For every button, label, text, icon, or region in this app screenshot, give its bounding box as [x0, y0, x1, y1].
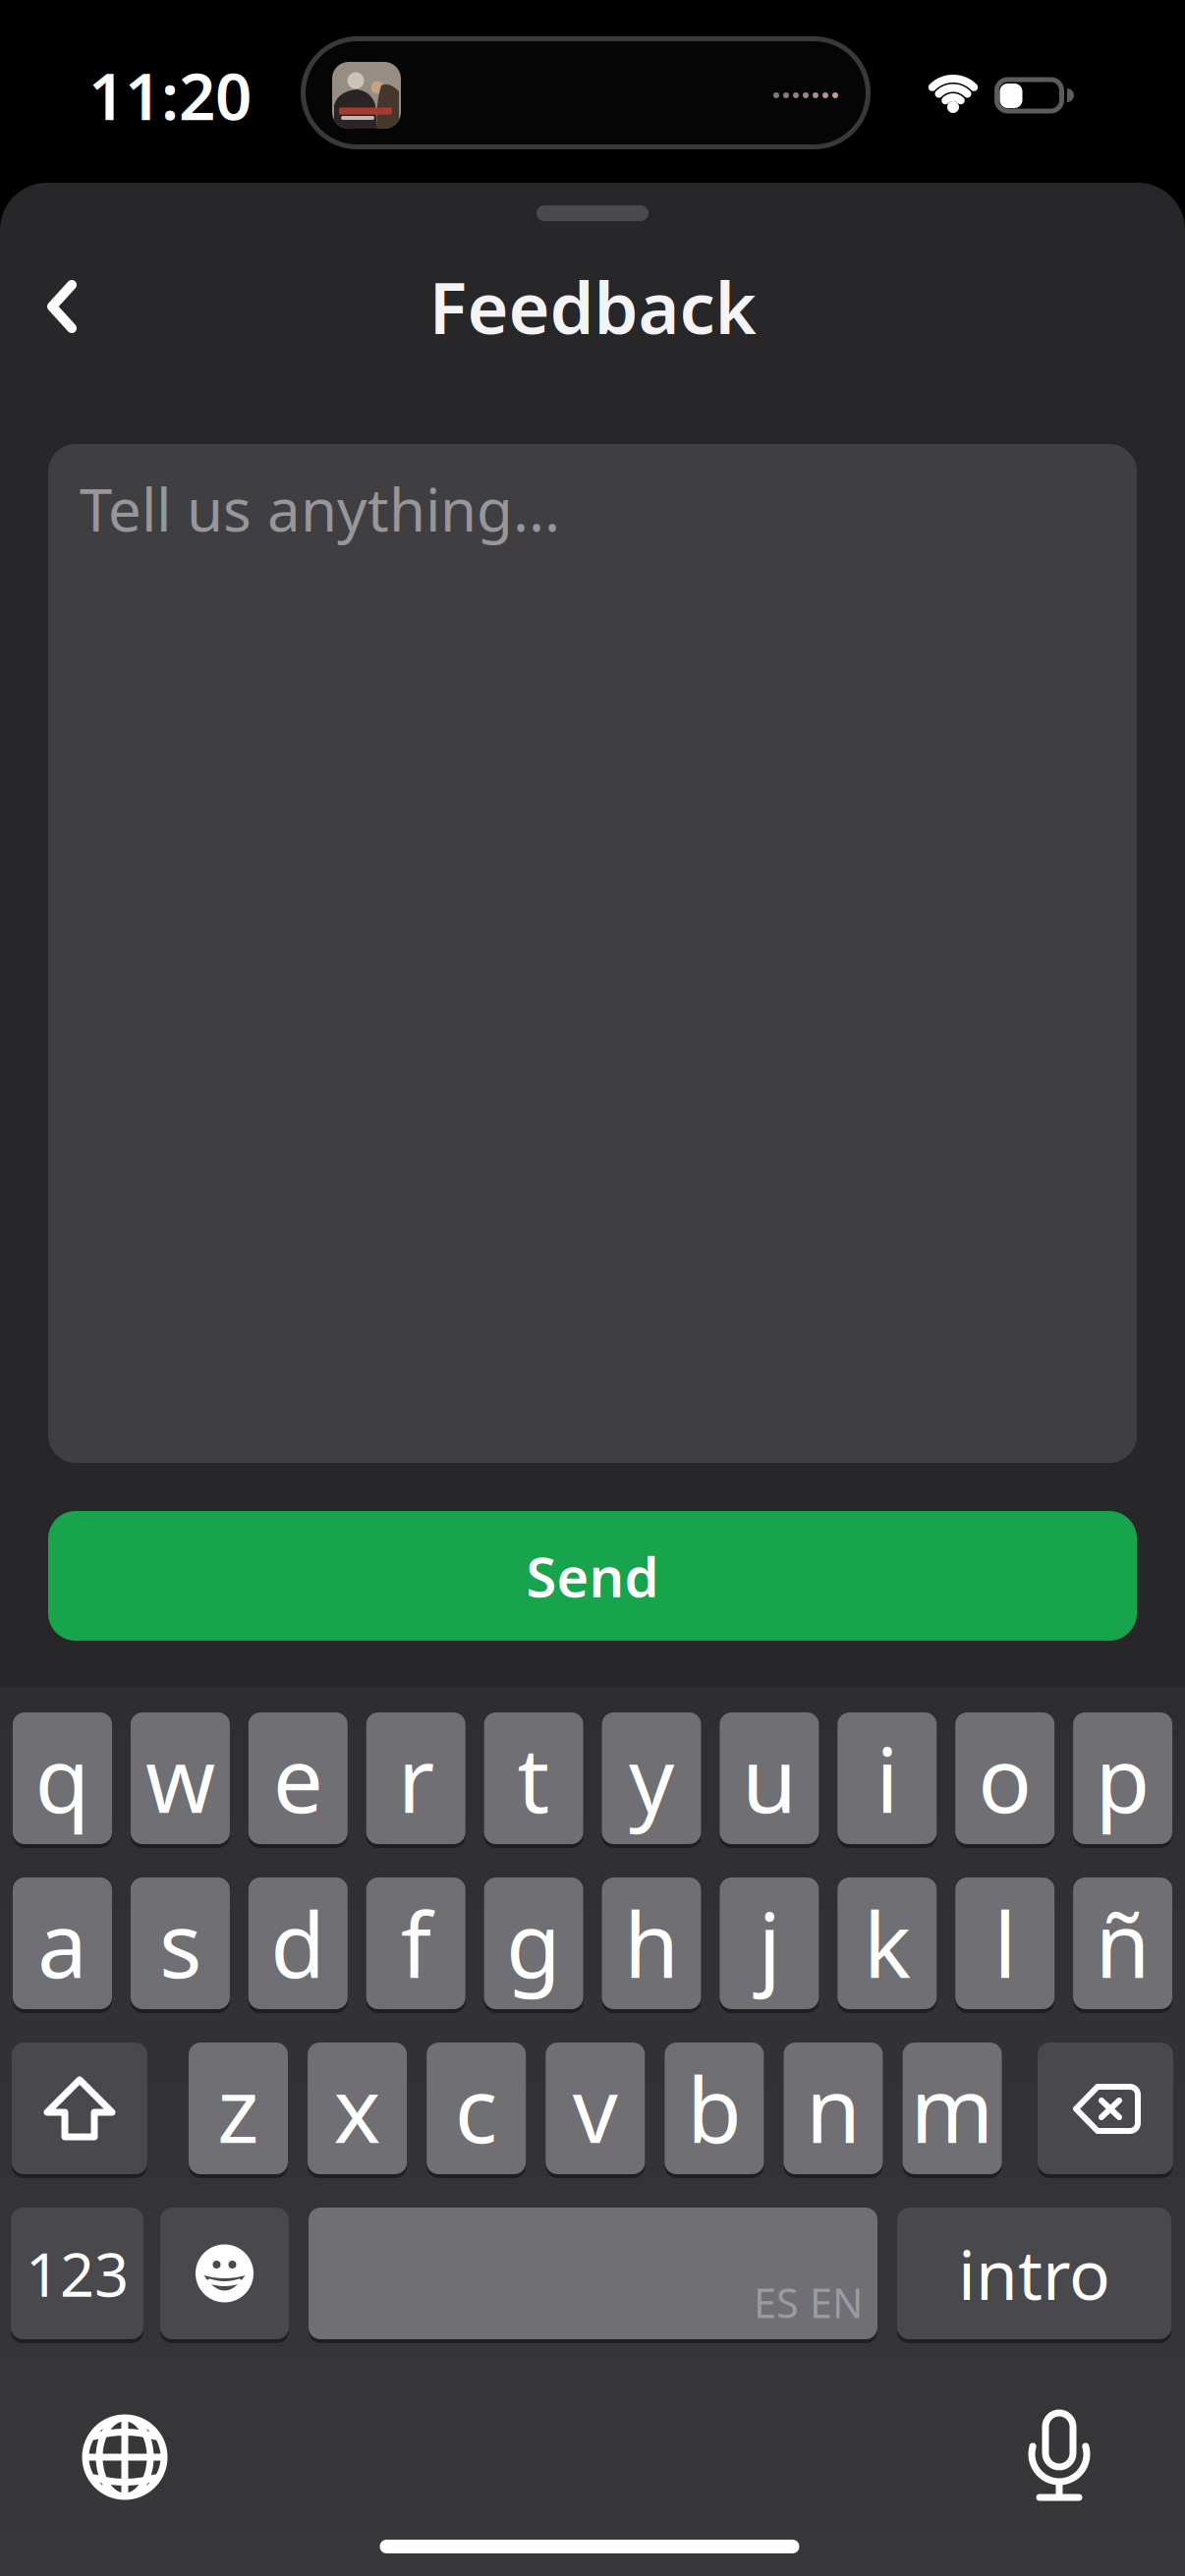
button[interactable]: k	[837, 1877, 937, 2013]
staticText: k	[863, 1884, 911, 2002]
button[interactable]: ñ	[1073, 1877, 1172, 2013]
staticText: n	[806, 2049, 861, 2167]
button[interactable]: r	[366, 1712, 465, 1848]
button[interactable]: g	[484, 1877, 583, 2013]
staticText: y	[629, 1719, 674, 1837]
staticText: f	[401, 1884, 431, 2002]
button[interactable]: z	[189, 2043, 288, 2178]
button[interactable]: y	[602, 1712, 701, 1848]
staticText: Send	[526, 1539, 659, 1612]
button[interactable]: Back	[18, 275, 104, 338]
staticText: a	[37, 1884, 87, 2002]
staticText: c	[455, 2049, 498, 2167]
staticText: z	[217, 2049, 259, 2167]
staticText: d	[271, 1884, 326, 2002]
staticText: g	[506, 1884, 561, 2002]
staticText: l	[994, 1884, 1016, 2002]
button[interactable]: o	[955, 1712, 1055, 1848]
staticText: ñ	[1095, 1884, 1150, 2002]
button[interactable]: a	[13, 1877, 112, 2013]
button[interactable]: x	[308, 2043, 407, 2178]
staticText: j	[758, 1884, 781, 2002]
button[interactable]: i	[837, 1712, 937, 1848]
staticText: u	[742, 1719, 797, 1837]
staticText: r	[398, 1719, 434, 1837]
button[interactable]: j	[720, 1877, 819, 2013]
button[interactable]: l	[955, 1877, 1055, 2013]
staticText: o	[978, 1719, 1032, 1837]
button[interactable]: intro	[897, 2208, 1171, 2343]
staticText: i	[876, 1719, 898, 1837]
button[interactable]: p	[1073, 1712, 1172, 1848]
staticText: p	[1095, 1719, 1150, 1837]
button[interactable]: Shift	[12, 2043, 147, 2178]
button[interactable]: c	[427, 2043, 526, 2178]
staticText: 123	[26, 2233, 129, 2313]
button[interactable]: Delete	[1038, 2043, 1173, 2178]
button[interactable]: n	[784, 2043, 883, 2178]
button[interactable]: m	[903, 2043, 1002, 2178]
button[interactable]: Emoji	[160, 2208, 289, 2343]
button[interactable]: s	[131, 1877, 230, 2013]
button[interactable]: Next keyboard	[71, 2403, 179, 2511]
button[interactable]: 123	[11, 2208, 143, 2343]
button[interactable]: t	[484, 1712, 583, 1848]
button[interactable]: v	[546, 2043, 645, 2178]
staticText: t	[517, 1719, 550, 1837]
button[interactable]: Space	[309, 2208, 877, 2343]
button[interactable]: Tell us anything...	[48, 444, 1137, 1463]
staticText: e	[273, 1719, 323, 1837]
button[interactable]: d	[248, 1877, 348, 2013]
button[interactable]: Dictate	[1005, 2400, 1113, 2508]
button[interactable]: q	[13, 1712, 112, 1848]
staticText: v	[573, 2049, 618, 2167]
staticText: q	[35, 1719, 90, 1837]
button[interactable]: b	[665, 2043, 764, 2178]
button[interactable]: w	[131, 1712, 230, 1848]
staticText: m	[910, 2049, 994, 2167]
staticText: s	[159, 1884, 201, 2002]
staticText: ES EN	[754, 2275, 863, 2329]
staticText: b	[687, 2049, 742, 2167]
staticText: w	[145, 1719, 215, 1837]
staticText: 11:20	[88, 53, 252, 138]
staticText: Feedback	[429, 260, 756, 353]
button[interactable]: Send	[48, 1511, 1137, 1641]
staticText: intro	[958, 2228, 1110, 2319]
button[interactable]: h	[602, 1877, 701, 2013]
button[interactable]: e	[248, 1712, 348, 1848]
staticText: h	[624, 1884, 679, 2002]
button[interactable]: u	[720, 1712, 819, 1848]
button[interactable]: f	[366, 1877, 465, 2013]
staticText: x	[334, 2049, 381, 2167]
staticText: Tell us anything...	[80, 470, 560, 548]
